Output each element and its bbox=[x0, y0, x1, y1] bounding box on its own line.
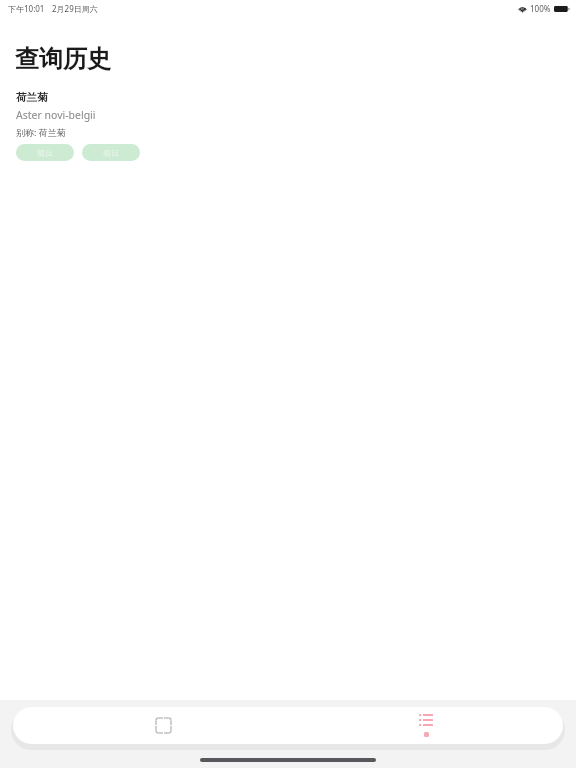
staticText: 荷兰菊 bbox=[16, 91, 48, 104]
staticText: Aster novi-belgii bbox=[16, 108, 96, 122]
button[interactable]: 查询历史列表 bbox=[389, 707, 463, 744]
staticText: 菊目 bbox=[103, 148, 119, 158]
button[interactable]: 荷兰菊 bbox=[0, 91, 576, 161]
button[interactable]: 菊目 bbox=[82, 144, 140, 161]
staticText: 别称: 荷兰菊 bbox=[16, 126, 66, 138]
button[interactable]: 扫描识别 bbox=[126, 707, 200, 744]
staticText: 查询历史 bbox=[15, 44, 111, 74]
staticText: 2月29日周六 bbox=[52, 3, 98, 14]
staticText: 菊目 bbox=[37, 148, 53, 158]
staticText: 下午10:01 bbox=[8, 3, 45, 14]
button[interactable]: 菊目 bbox=[16, 144, 74, 161]
staticText: 100% bbox=[530, 3, 551, 14]
